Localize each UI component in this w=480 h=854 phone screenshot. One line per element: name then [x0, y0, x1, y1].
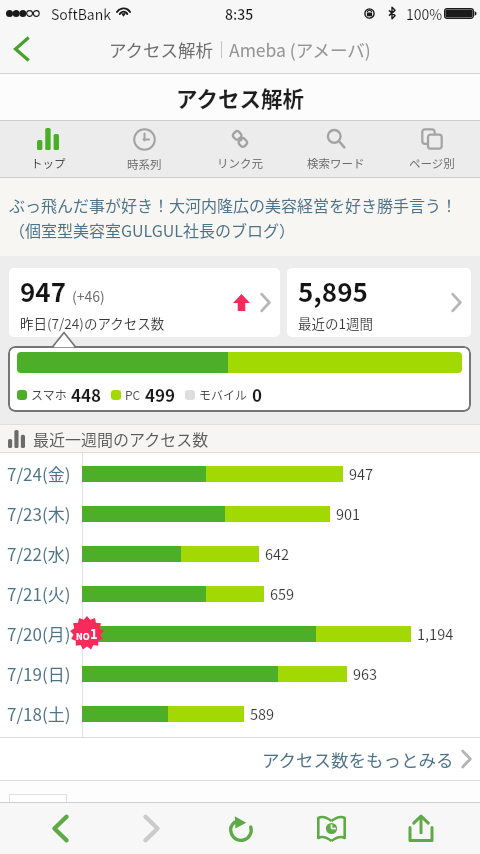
staticText: 7/19(日): [7, 661, 82, 686]
staticText: モバイル: [199, 386, 248, 403]
button[interactable]: トップ: [0, 121, 96, 177]
staticText: アクセス解析: [109, 37, 214, 62]
staticText: スマホ: [31, 386, 67, 403]
staticText: 499: [145, 382, 176, 407]
button[interactable]: リンク元: [192, 121, 288, 177]
staticText: 0: [252, 382, 263, 407]
staticText: アクセス解析: [176, 82, 304, 113]
staticText: 963: [353, 663, 378, 684]
staticText: 最近の1週間: [298, 313, 373, 333]
button[interactable]: Forward: [121, 803, 181, 854]
button[interactable]: ページ別: [384, 121, 480, 177]
button[interactable]: アクセス数をもっとみる: [0, 738, 480, 780]
staticText: (+46): [72, 286, 105, 306]
staticText: 448: [71, 382, 102, 407]
button[interactable]: 7/20(月): [0, 613, 480, 653]
button[interactable]: Reload: [211, 803, 271, 854]
staticText: NO: [76, 630, 90, 643]
staticText: 642: [265, 543, 290, 564]
staticText: SoftBank: [51, 4, 112, 24]
staticText: 時系列: [127, 156, 162, 173]
staticText: ぶっ飛んだ事が好き！大河内隆広の美容経営を好き勝手言う！ （個室型美容室GULG…: [9, 193, 458, 242]
staticText: 947: [349, 463, 374, 484]
staticText: 7/24(金): [7, 461, 82, 486]
staticText: 8:35: [225, 4, 254, 24]
button[interactable]: 7/18(土): [0, 693, 480, 733]
staticText: トップ: [31, 155, 66, 172]
staticText: 最近一週間のアクセス数: [33, 427, 209, 450]
staticText: 7/21(火): [7, 581, 82, 606]
staticText: 659: [270, 583, 295, 604]
button[interactable]: 7/19(日): [0, 653, 480, 693]
button[interactable]: ぶっ飛んだ事が好き！大河内隆広の美容経営を好き勝手言う！ （個室型美容室GULG…: [0, 178, 480, 256]
button[interactable]: 7/21(火): [0, 573, 480, 613]
staticText: 589: [250, 703, 275, 724]
staticText: ページ別: [409, 155, 455, 172]
button[interactable]: 7/23(木): [0, 493, 480, 533]
staticText: 7/20(月): [7, 621, 82, 646]
button[interactable]: Share: [391, 803, 451, 854]
button[interactable]: 7/24(金): [0, 453, 480, 493]
staticText: 1: [90, 624, 98, 643]
staticText: アクセス数をもっとみる: [262, 747, 454, 772]
button[interactable]: 947: [9, 268, 280, 337]
staticText: 7/23(木): [7, 501, 82, 526]
button[interactable]: Back: [30, 803, 90, 854]
staticText: 昨日(7/24)のアクセス数: [20, 313, 165, 333]
button[interactable]: 5,895: [287, 268, 471, 337]
staticText: Ameba (アメーバ): [229, 37, 371, 62]
staticText: 7/22(水): [7, 541, 82, 566]
button[interactable]: 時系列: [96, 121, 192, 177]
staticText: PC: [125, 386, 141, 403]
staticText: 5,895: [298, 272, 368, 310]
staticText: 901: [336, 503, 361, 524]
button[interactable]: Bookmarks: [301, 803, 361, 854]
staticText: 1,194: [417, 623, 454, 644]
staticText: リンク元: [217, 155, 263, 172]
button[interactable]: Back: [0, 27, 46, 73]
button[interactable]: 7/22(水): [0, 533, 480, 573]
staticText: 947: [20, 272, 67, 310]
button[interactable]: 検索ワード: [288, 121, 384, 177]
staticText: 7/18(土): [7, 701, 82, 726]
staticText: 検索ワード: [307, 155, 365, 172]
staticText: 100%: [406, 4, 443, 24]
